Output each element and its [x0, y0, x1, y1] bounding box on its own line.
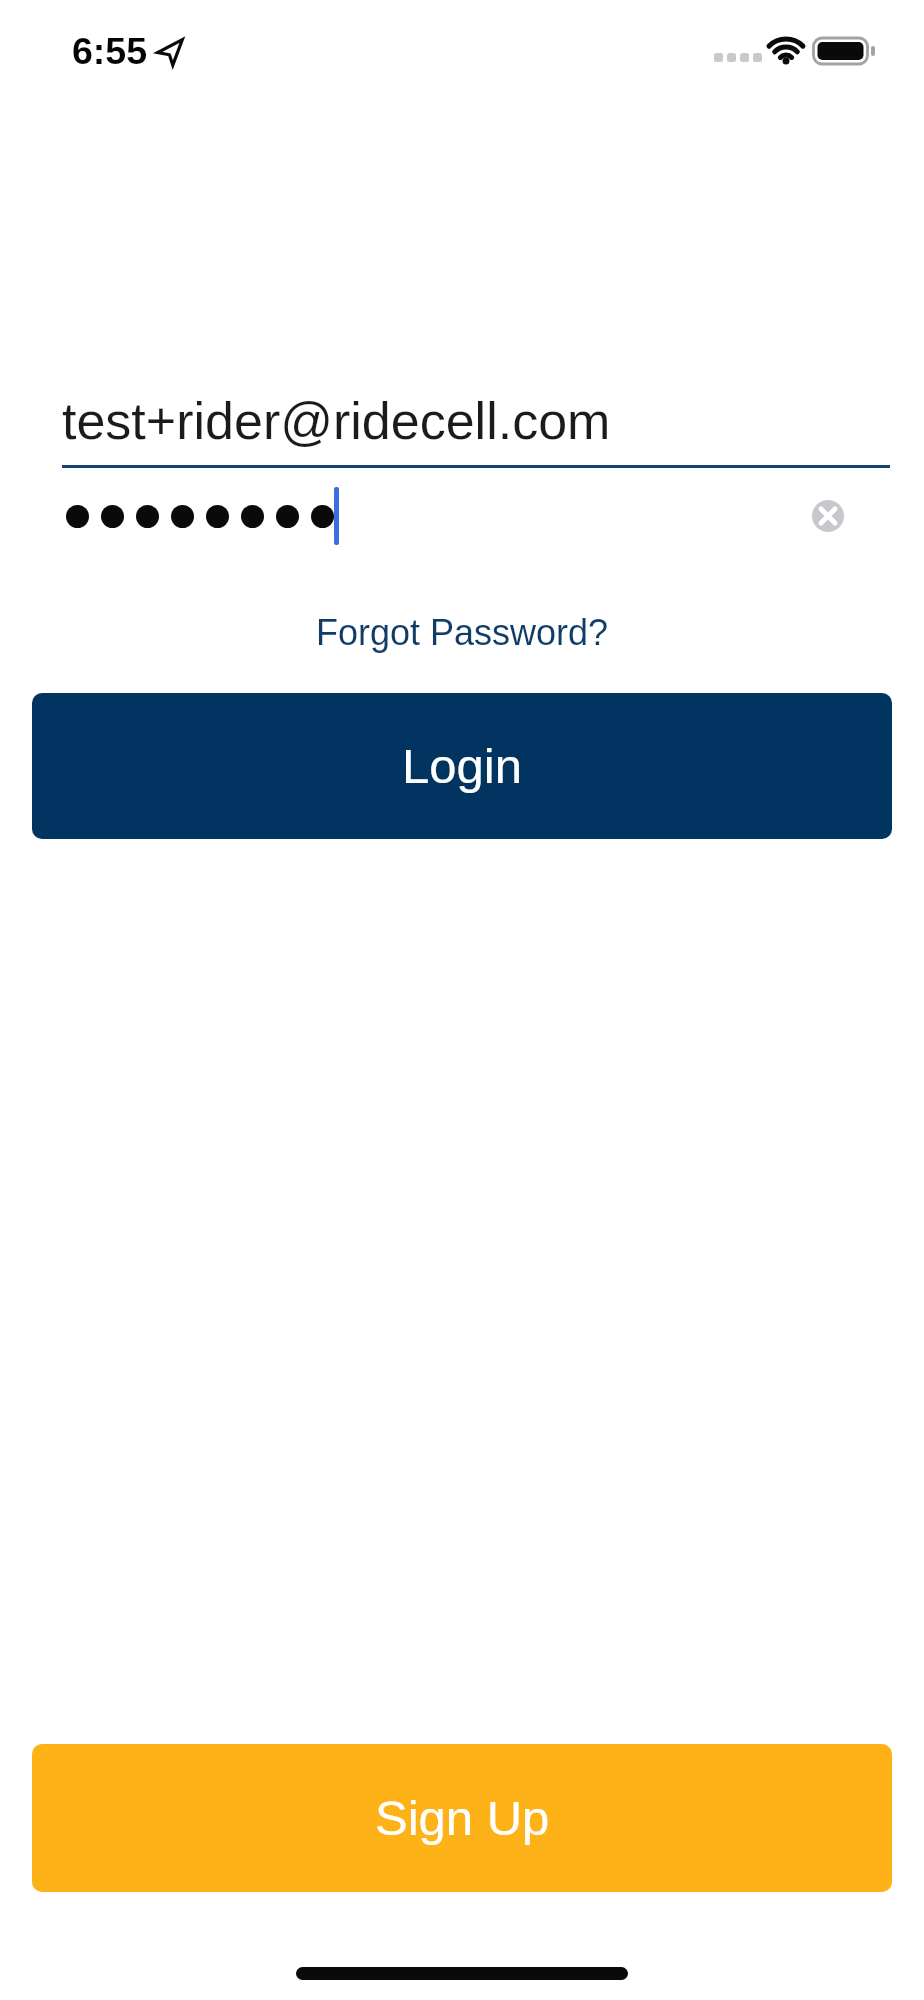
button[interactable]: Forgot Password?: [316, 612, 609, 652]
staticText: Forgot Password?: [316, 612, 609, 652]
button[interactable]: Login: [32, 693, 892, 839]
staticText: Sign Up: [375, 1791, 550, 1846]
button[interactable]: [812, 500, 844, 532]
staticText: test+rider@ridecell.com: [62, 392, 611, 450]
staticText: 6:55: [72, 30, 148, 72]
button[interactable]: Sign Up: [32, 1744, 892, 1892]
staticText: Login: [402, 739, 522, 794]
button[interactable]: test+rider@ridecell.com: [62, 392, 890, 464]
